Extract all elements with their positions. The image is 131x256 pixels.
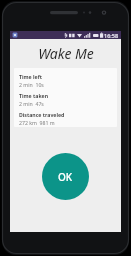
staticText: Wake Me (38, 44, 94, 63)
staticText: Time left (19, 73, 42, 80)
button[interactable]: OK (42, 153, 89, 200)
staticText: 16:58 (104, 32, 119, 39)
button[interactable]: Time left (14, 68, 117, 127)
staticText: 272 km 981 m (19, 119, 55, 126)
staticText: 2 min 47s (19, 100, 44, 107)
staticText: OK (58, 170, 73, 184)
staticText: 2 min 10s (19, 81, 44, 88)
staticText: Distance traveled (19, 111, 65, 118)
staticText: Time taken (19, 92, 49, 99)
